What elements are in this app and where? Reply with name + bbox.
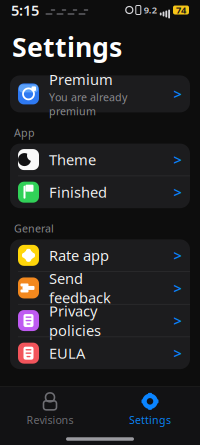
staticText: Privacy policies (49, 301, 101, 340)
staticText: You are already premium (49, 90, 127, 118)
button[interactable]: Send feedback (10, 272, 190, 304)
staticText: 74 (176, 4, 186, 16)
staticText: Finished (49, 182, 107, 202)
button[interactable]: Theme (10, 144, 190, 176)
button[interactable]: Finished (10, 176, 190, 208)
button[interactable]: Rate app (10, 239, 190, 271)
staticText: General (14, 221, 54, 235)
staticText: App (14, 125, 35, 140)
staticText: > (173, 311, 181, 330)
staticText: > (173, 150, 181, 169)
staticText: > (173, 246, 181, 265)
staticText: 9.2 (144, 4, 157, 16)
staticText: Settings (129, 413, 171, 427)
staticText: EULA (49, 343, 85, 363)
staticText: > (173, 278, 181, 298)
staticText: Revisions (26, 413, 73, 427)
button[interactable]: EULA (10, 337, 190, 369)
staticText: > (173, 343, 181, 363)
staticText: 5:15 (11, 0, 39, 20)
staticText: Send feedback (49, 268, 111, 307)
staticText: Theme (49, 150, 96, 169)
staticText: Settings (12, 29, 122, 64)
staticText: > (173, 84, 181, 104)
button[interactable]: Premium (10, 75, 190, 112)
button[interactable]: Settings (100, 387, 200, 433)
staticText: > (173, 182, 181, 202)
button[interactable]: Revisions (0, 387, 100, 433)
staticText: Premium (49, 69, 113, 89)
staticText: Rate app (49, 246, 109, 265)
button[interactable]: Privacy policies (10, 304, 190, 336)
